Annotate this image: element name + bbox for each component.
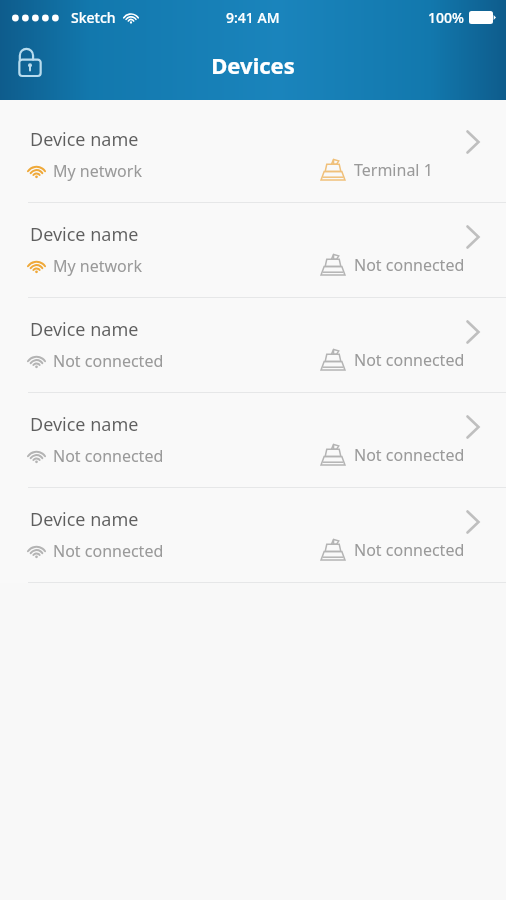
staticText: 9:41 AM [226,8,280,27]
staticText: Not connected [53,445,164,467]
button[interactable]: Device name [0,393,506,487]
staticText: Device name [30,127,139,152]
staticText: Terminal 1 [354,159,433,181]
staticText: My network [53,160,142,182]
staticText: Device name [30,222,139,247]
staticText: Not connected [354,539,465,561]
staticText: Device name [30,412,139,437]
staticText: Device name [30,507,139,532]
staticText: Not connected [354,349,465,371]
staticText: Not connected [354,254,465,276]
button[interactable]: Device name [0,203,506,297]
staticText: Not connected [53,350,164,372]
button[interactable]: Device name [0,488,506,582]
staticText: Device name [30,317,139,342]
staticText: Not connected [53,540,164,562]
staticText: Not connected [354,444,465,466]
button[interactable]: Device name [0,298,506,392]
staticText: Sketch [71,8,116,27]
staticText: My network [53,255,142,277]
staticText: 100% [428,8,464,27]
staticText: Devices [0,50,506,80]
button[interactable]: Device name [0,108,506,202]
button[interactable]: Unlock [6,38,54,86]
